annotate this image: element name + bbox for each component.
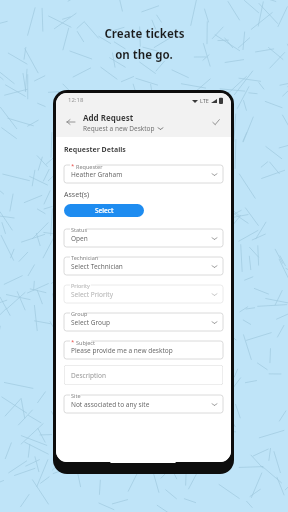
staticText: Subject bbox=[76, 339, 95, 346]
staticText: Requester bbox=[76, 163, 103, 170]
staticText: Open bbox=[71, 234, 212, 243]
staticText: on the go. bbox=[115, 47, 173, 63]
staticText: Add Request bbox=[83, 112, 134, 123]
button[interactable]: Save bbox=[208, 114, 224, 130]
button[interactable]: * bbox=[64, 161, 223, 183]
staticText: * bbox=[71, 162, 75, 170]
staticText: Asset(s) bbox=[64, 190, 90, 200]
staticText: Technician bbox=[71, 254, 99, 261]
button[interactable]: Group bbox=[64, 309, 223, 331]
staticText: Requester Details bbox=[64, 145, 126, 155]
button[interactable]: Description bbox=[64, 365, 223, 385]
button[interactable]: Status bbox=[64, 225, 223, 247]
staticText: * bbox=[71, 338, 75, 346]
staticText: Group bbox=[71, 310, 88, 317]
staticText: 12:18 bbox=[68, 96, 84, 104]
staticText: Select Technician bbox=[71, 262, 212, 271]
staticText: Site bbox=[71, 392, 81, 399]
staticText: Request a new Desktop bbox=[83, 124, 155, 133]
button[interactable]: Priority bbox=[64, 281, 223, 303]
staticText: Select Group bbox=[71, 318, 212, 327]
button[interactable]: Technician bbox=[64, 253, 223, 275]
button[interactable]: Select bbox=[64, 204, 144, 217]
button[interactable]: Back bbox=[63, 114, 79, 130]
staticText: Not associated to any site bbox=[71, 400, 212, 409]
staticText: LTE bbox=[200, 97, 209, 104]
staticText: Select Priority bbox=[71, 290, 212, 299]
staticText: Please provide me a new desktop bbox=[71, 346, 217, 355]
staticText: Priority bbox=[71, 282, 90, 289]
staticText: Select bbox=[95, 206, 114, 215]
staticText: Create tickets bbox=[104, 26, 185, 42]
staticText: Status bbox=[71, 226, 88, 233]
staticText: Heather Graham bbox=[71, 170, 212, 179]
button[interactable]: Site bbox=[64, 391, 223, 413]
staticText: Description bbox=[71, 371, 106, 380]
button[interactable]: * bbox=[64, 337, 223, 359]
